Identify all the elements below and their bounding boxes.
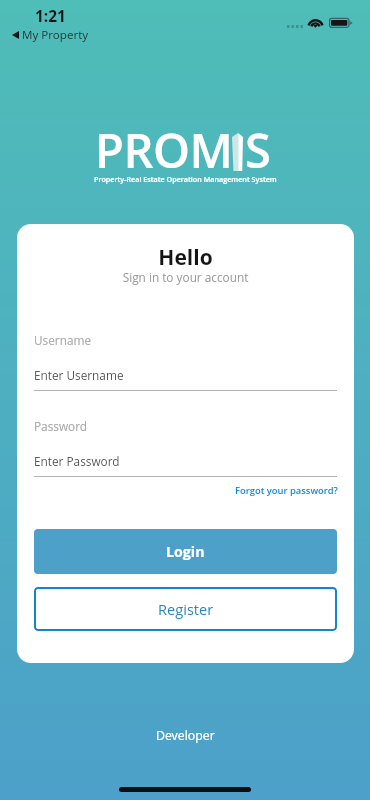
staticText: Enter Username [34,367,124,383]
button[interactable]: Back to My Property [6,25,95,45]
staticText: Enter Password [34,453,120,469]
staticText: Sign in to your account [17,269,354,285]
staticText: Username [34,332,92,348]
staticText: Hello [17,243,354,272]
button[interactable]: Username [34,332,337,391]
button[interactable]: Login [34,529,337,574]
staticText: Forgot your password? [235,484,338,497]
button[interactable]: Forgot your password? [227,481,354,500]
other: Wi-Fi [308,17,323,28]
staticText: Login [166,542,205,561]
other: Cellular signal [287,25,303,28]
staticText: Password [34,418,88,434]
other: Battery [329,17,353,28]
staticText: PROM [95,118,233,174]
staticText: My Property [22,27,89,43]
staticText: Register [158,599,214,619]
button[interactable]: Password [34,418,337,477]
staticText: Property-Real Estate Operation Managemen… [94,174,277,184]
button[interactable]: Register [34,587,337,631]
staticText: 1:21 [35,5,66,26]
staticText: Developer [156,727,215,744]
button[interactable]: Developer [150,725,221,746]
staticText: S [245,118,271,174]
